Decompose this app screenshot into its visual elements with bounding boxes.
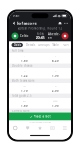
staticText: Over [22, 100, 26, 102]
staticText: 1.70 [21, 89, 28, 92]
staticText: 2 [55, 55, 56, 57]
staticText: 1.95 [52, 104, 59, 107]
staticText: Yes [23, 85, 26, 87]
staticText: Scottish Premiership, Round 12 [17, 27, 62, 30]
staticText: H2H [62, 43, 68, 47]
button[interactable]: News [46, 124, 59, 131]
staticText: Today [36, 32, 43, 35]
staticText: Under [53, 100, 58, 102]
staticText: Aberdeen [48, 32, 60, 40]
staticText: Total goals 2.5 [12, 94, 32, 97]
button[interactable]: 2 [40, 53, 71, 63]
staticText: 20:45 [35, 35, 44, 40]
button[interactable]: Back [11, 20, 16, 26]
button[interactable]: Under [40, 98, 71, 108]
staticText: Table [52, 43, 59, 47]
staticText: Full time [12, 49, 24, 52]
staticText: Sofascore [16, 21, 36, 26]
staticText: 1.95 [52, 74, 59, 77]
button[interactable]: More options [63, 20, 69, 26]
staticText: Both teams score [12, 79, 35, 82]
button[interactable]: H2H [62, 43, 68, 47]
staticText: 1.22 [21, 74, 28, 77]
button[interactable]: Over [9, 98, 40, 108]
staticText: 1 [24, 55, 25, 57]
button[interactable]: 1-0 [9, 113, 40, 123]
button[interactable]: 1 [9, 53, 40, 63]
button[interactable]: Yes [9, 83, 40, 93]
staticText: Place a bet [34, 115, 51, 118]
staticText: Correct score [12, 109, 30, 112]
button[interactable]: X2 [40, 68, 71, 78]
button[interactable]: 1X [9, 68, 40, 78]
staticText: X2 [54, 70, 56, 72]
button[interactable]: Odds [11, 43, 23, 47]
staticText: Lineups [38, 43, 49, 47]
staticText: 1.85 [21, 59, 28, 62]
staticText: Details [26, 43, 35, 47]
button[interactable]: No [40, 83, 71, 93]
button[interactable]: Lineups [38, 43, 49, 47]
button[interactable]: Notifications [57, 20, 63, 26]
button[interactable]: Table [52, 43, 59, 47]
staticText: 1.80 [21, 104, 28, 107]
staticText: 4.20 [52, 59, 59, 62]
button[interactable]: Scores [9, 124, 21, 131]
staticText: 2.05 [52, 89, 59, 92]
staticText: 1X [23, 70, 25, 72]
button[interactable]: Favourites [34, 124, 46, 131]
staticText: Double chance [12, 64, 33, 67]
button[interactable]: Leagues [21, 124, 34, 131]
staticText: Celtic [20, 34, 28, 38]
button[interactable]: Place a bet [9, 112, 71, 120]
staticText: 18+ · Please gamble responsibly [29, 122, 51, 123]
button[interactable]: 2-1 [40, 113, 71, 123]
staticText: Odds [14, 43, 21, 47]
button[interactable]: Details [26, 43, 35, 47]
staticText: No [54, 85, 56, 87]
button[interactable]: Menu [59, 124, 71, 131]
staticText: 8.00 [52, 119, 59, 122]
staticText: 6.50 [21, 119, 28, 122]
staticText: 9:41 [13, 14, 20, 17]
